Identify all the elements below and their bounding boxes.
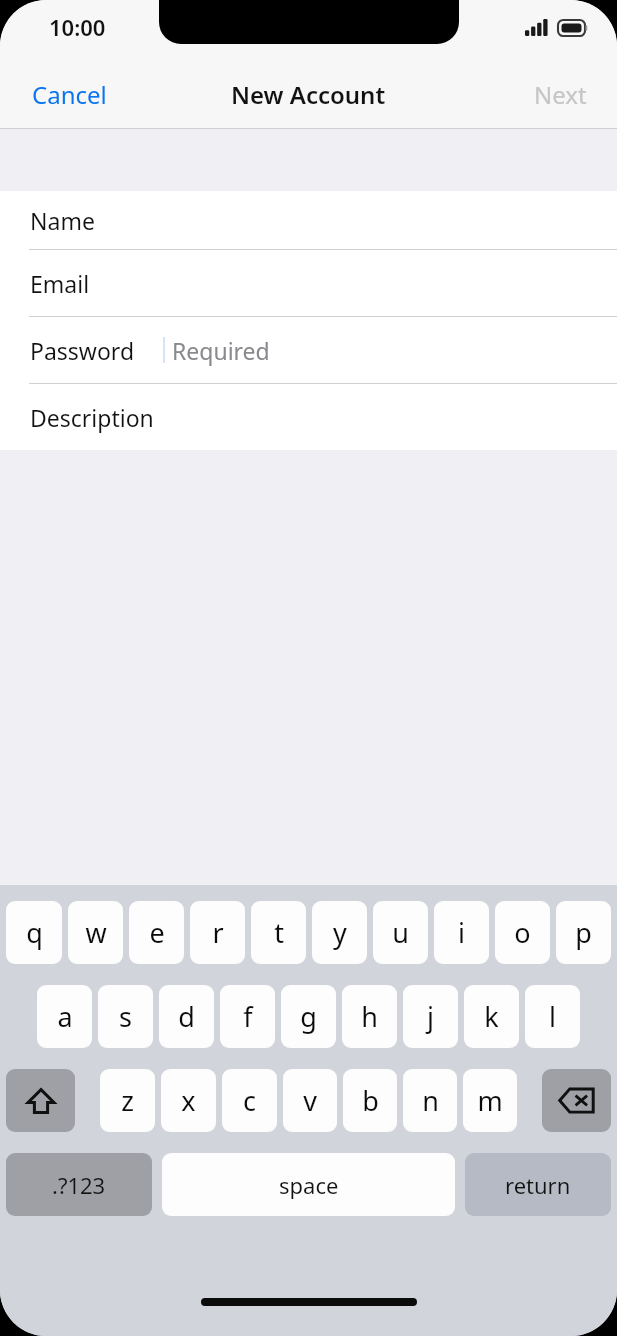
button[interactable]: Description	[0, 384, 617, 450]
button[interactable]: y	[312, 901, 367, 964]
staticText: Description	[30, 402, 154, 433]
staticText: t	[274, 914, 284, 951]
staticText: Name	[30, 205, 95, 236]
staticText: c	[243, 1082, 256, 1119]
button[interactable]: u	[373, 901, 428, 964]
staticText: Cancel	[32, 78, 107, 111]
button[interactable]: j	[403, 985, 458, 1048]
staticText: .?123	[52, 1170, 106, 1200]
button[interactable]: .?123	[6, 1153, 152, 1216]
button[interactable]: f	[220, 985, 275, 1048]
button[interactable]: q	[6, 901, 62, 964]
staticText: h	[361, 998, 378, 1035]
staticText: New Account	[231, 78, 386, 111]
staticText: Next	[534, 78, 587, 111]
button[interactable]: w	[68, 901, 123, 964]
button[interactable]: h	[342, 985, 397, 1048]
button[interactable]: Shift	[6, 1069, 75, 1132]
button[interactable]: k	[464, 985, 519, 1048]
button[interactable]: l	[525, 985, 580, 1048]
staticText: k	[484, 998, 499, 1035]
staticText: g	[300, 998, 317, 1035]
button[interactable]: Next	[504, 60, 617, 128]
staticText: n	[422, 1082, 439, 1119]
staticText: r	[212, 914, 224, 951]
button[interactable]: v	[283, 1069, 337, 1132]
staticText: e	[149, 914, 165, 951]
button[interactable]: e	[129, 901, 184, 964]
staticText: return	[505, 1170, 571, 1200]
button[interactable]: s	[98, 985, 153, 1048]
button[interactable]: p	[556, 901, 611, 964]
button[interactable]: t	[251, 901, 306, 964]
staticText: Required	[172, 335, 270, 366]
button[interactable]: m	[463, 1069, 517, 1132]
staticText: Email	[30, 268, 90, 299]
staticText: s	[119, 998, 132, 1035]
staticText: a	[57, 998, 73, 1035]
staticText: l	[549, 998, 556, 1035]
button[interactable]: Name	[0, 191, 617, 249]
button[interactable]: i	[434, 901, 489, 964]
button[interactable]: o	[495, 901, 550, 964]
staticText: z	[121, 1082, 134, 1119]
staticText: m	[477, 1082, 503, 1119]
button[interactable]: a	[37, 985, 92, 1048]
staticText: x	[181, 1082, 196, 1119]
button[interactable]: z	[100, 1069, 155, 1132]
staticText: f	[243, 998, 253, 1035]
button[interactable]: b	[343, 1069, 397, 1132]
staticText: p	[575, 914, 592, 951]
staticText: Password	[30, 335, 135, 366]
button[interactable]: Password	[0, 317, 617, 383]
button[interactable]: Cancel	[0, 60, 139, 128]
button[interactable]: d	[159, 985, 214, 1048]
staticText: q	[26, 914, 43, 951]
staticText: space	[279, 1170, 339, 1200]
staticText: v	[303, 1082, 317, 1119]
button[interactable]: Email	[0, 250, 617, 316]
staticText: d	[178, 998, 195, 1035]
button[interactable]: g	[281, 985, 336, 1048]
button[interactable]: Backspace	[542, 1069, 611, 1132]
staticText: b	[362, 1082, 379, 1119]
button[interactable]: c	[222, 1069, 277, 1132]
button[interactable]: space	[162, 1153, 455, 1216]
staticText: j	[427, 998, 434, 1035]
button[interactable]: x	[161, 1069, 216, 1132]
button[interactable]: n	[403, 1069, 457, 1132]
button[interactable]: return	[465, 1153, 611, 1216]
staticText: o	[514, 914, 531, 951]
staticText: y	[333, 914, 347, 951]
staticText: u	[392, 914, 409, 951]
staticText: 10:00	[49, 12, 106, 42]
staticText: i	[458, 914, 465, 951]
button[interactable]: r	[190, 901, 245, 964]
staticText: w	[85, 914, 107, 951]
